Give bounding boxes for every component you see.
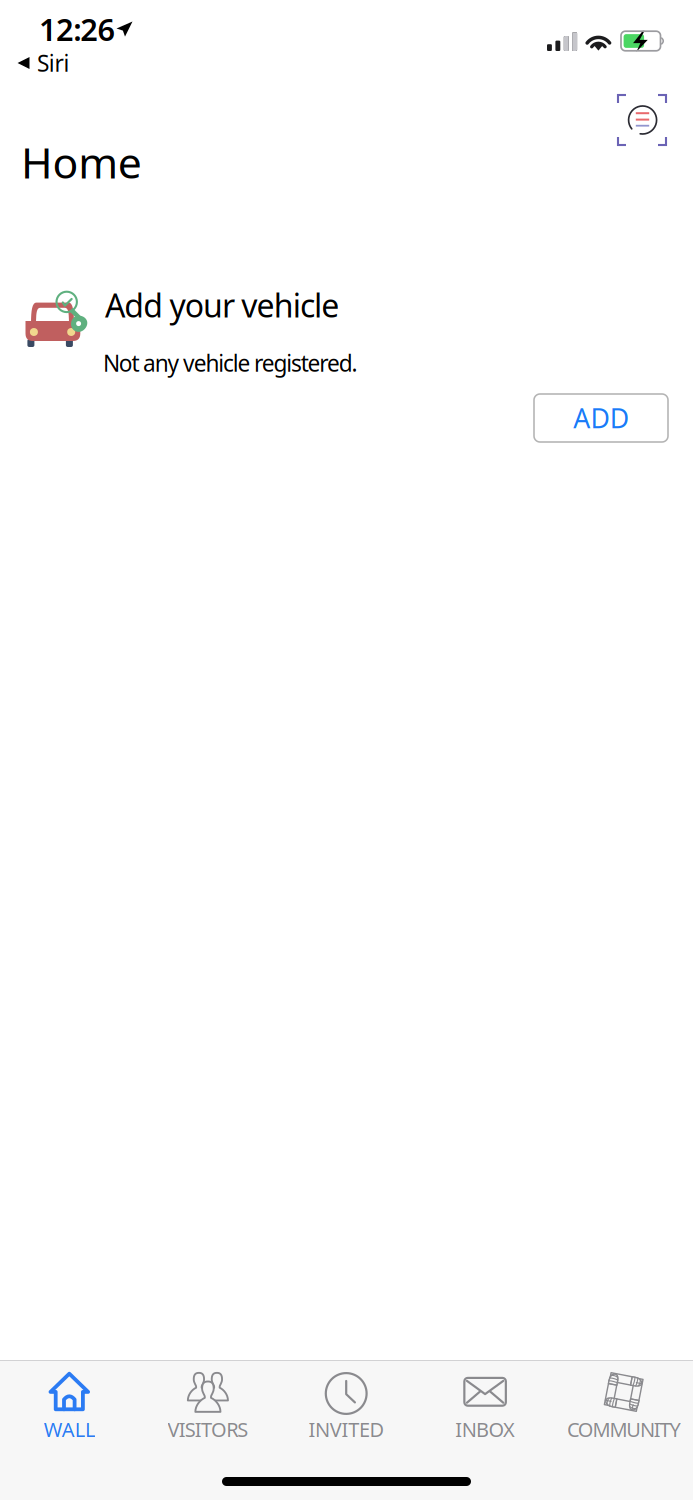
staticText: Add your vehicle — [105, 284, 339, 326]
button[interactable]: INBOX — [416, 1360, 554, 1500]
button[interactable]: ADD — [534, 394, 668, 442]
staticText: Not any vehicle registered. — [103, 348, 357, 378]
button[interactable]: WALL — [0, 1360, 139, 1500]
staticText: INBOX — [455, 1416, 515, 1443]
button[interactable]: INVITED — [277, 1360, 416, 1500]
staticText: ADD — [573, 400, 629, 436]
staticText: WALL — [44, 1416, 95, 1443]
button[interactable]: COMMUNITY — [554, 1360, 693, 1500]
staticText: INVITED — [308, 1416, 385, 1443]
staticText: Home — [21, 134, 142, 190]
button[interactable]: Scan code — [614, 91, 670, 149]
staticText: Siri — [37, 48, 69, 78]
staticText: 12:26 — [39, 9, 115, 49]
staticText: VISITORS — [168, 1416, 248, 1443]
staticText: COMMUNITY — [567, 1416, 680, 1443]
button[interactable]: VISITORS — [139, 1360, 277, 1500]
